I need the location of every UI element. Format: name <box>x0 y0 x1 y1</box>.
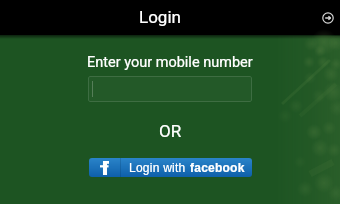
button[interactable]: Login with <box>89 158 252 177</box>
staticText: facebook <box>190 161 245 174</box>
staticText: Login <box>139 7 181 27</box>
button[interactable] <box>88 76 252 102</box>
staticText: OR <box>159 121 182 141</box>
staticText: Enter your mobile number <box>87 54 253 71</box>
staticText: Login with <box>129 161 190 174</box>
button[interactable]: Next <box>316 6 340 30</box>
